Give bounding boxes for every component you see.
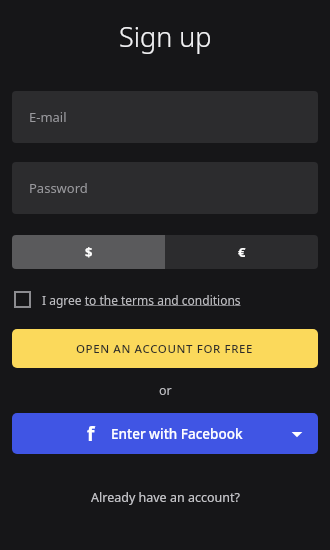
button[interactable]: € — [165, 235, 318, 269]
staticText: Already have an account? — [91, 489, 240, 506]
button[interactable]: Already have an account? — [12, 489, 318, 506]
button[interactable]: f — [12, 413, 318, 454]
other: More options — [291, 428, 303, 440]
staticText: f — [87, 421, 95, 447]
staticText: Password — [29, 179, 88, 197]
staticText: $ — [85, 243, 93, 261]
staticText: € — [238, 243, 246, 261]
staticText: Enter with Facebook — [111, 425, 243, 443]
staticText: Sign up — [119, 18, 212, 55]
button[interactable]: OPEN AN ACCOUNT FOR FREE — [12, 329, 318, 368]
staticText: or — [159, 382, 172, 399]
staticText: OPEN AN ACCOUNT FOR FREE — [76, 341, 254, 357]
button[interactable]: $ — [12, 235, 165, 269]
staticText: E-mail — [29, 108, 67, 126]
button[interactable]: Password — [12, 162, 318, 214]
button[interactable]: E-mail — [12, 91, 318, 143]
button[interactable]: I agree to the terms and conditions — [12, 291, 318, 308]
staticText: I agree to the terms and conditions — [42, 292, 241, 308]
